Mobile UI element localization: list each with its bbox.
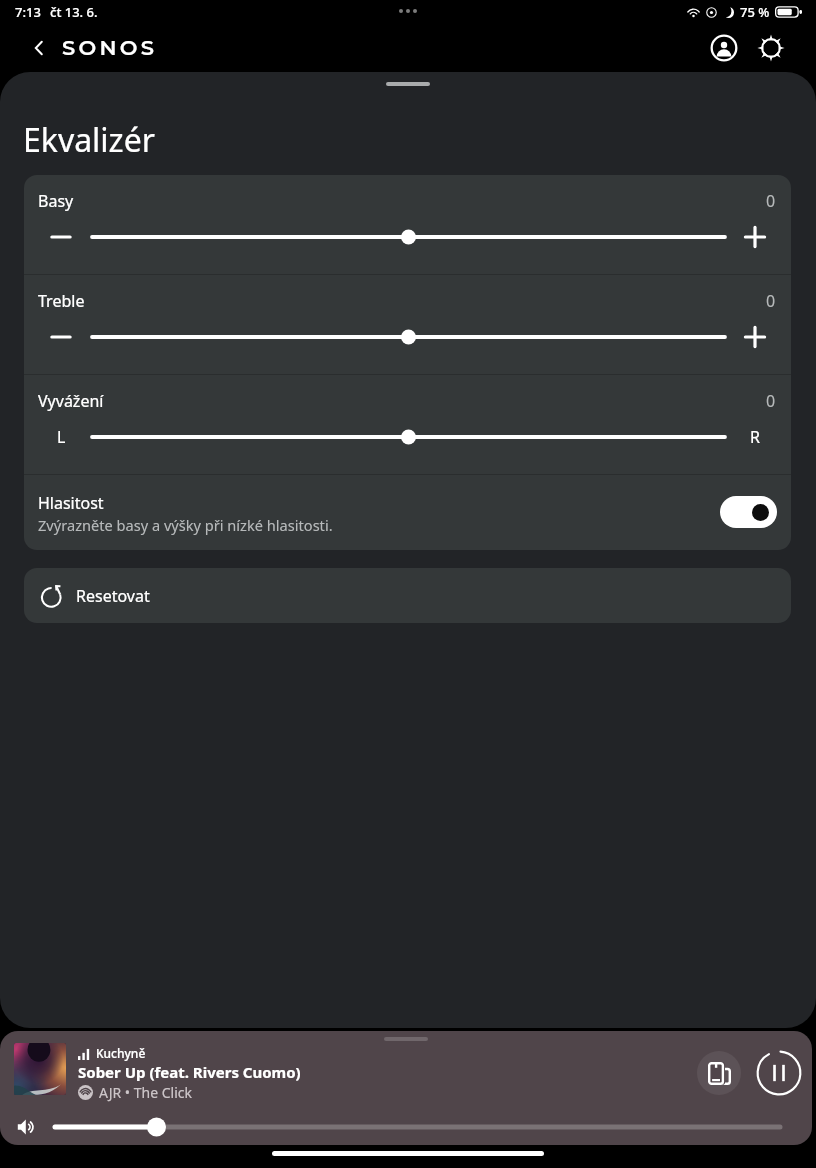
staticText: Sober Up (feat. Rivers Cuomo)	[78, 1062, 301, 1082]
button[interactable]: Pause	[755, 1049, 803, 1097]
other: Decrease	[49, 325, 73, 349]
other: Increase	[743, 325, 767, 349]
staticText: Vyvážení	[38, 390, 104, 412]
other: Decrease	[49, 225, 73, 249]
button[interactable]: Speakers	[697, 1051, 741, 1095]
staticText: Zvýrazněte basy a výšky při nízké hlasit…	[38, 515, 333, 535]
button[interactable]: Vyvážení	[24, 375, 791, 474]
staticText: Ekvalizér	[23, 118, 155, 162]
button[interactable]: Treble	[24, 275, 791, 374]
staticText: 75 %	[740, 3, 770, 21]
staticText: Hlasitost	[38, 492, 104, 514]
staticText: 0	[766, 190, 776, 212]
staticText: AJR • The Click	[99, 1083, 192, 1102]
other: Back	[29, 38, 49, 58]
button[interactable]: Settings	[753, 30, 789, 66]
staticText: 0	[766, 290, 776, 312]
staticText: čt 13. 6.	[50, 3, 98, 21]
staticText: 7:13	[15, 3, 41, 21]
staticText: R	[750, 426, 760, 448]
staticText: Resetovat	[76, 585, 150, 607]
other: Increase	[743, 225, 767, 249]
staticText: Basy	[38, 190, 74, 212]
staticText: 0	[766, 390, 776, 412]
staticText: SONOS	[62, 35, 158, 61]
button[interactable]: Resetovat	[24, 568, 791, 623]
button[interactable]: Account	[706, 30, 742, 66]
button[interactable]: Basy	[24, 175, 791, 274]
staticText: Treble	[38, 290, 85, 312]
staticText: L	[57, 426, 66, 448]
button[interactable]: Hlasitost	[24, 475, 791, 550]
button[interactable]: Back	[29, 35, 158, 61]
staticText: Kuchyně	[96, 1045, 146, 1061]
other: Volume	[17, 1117, 37, 1137]
